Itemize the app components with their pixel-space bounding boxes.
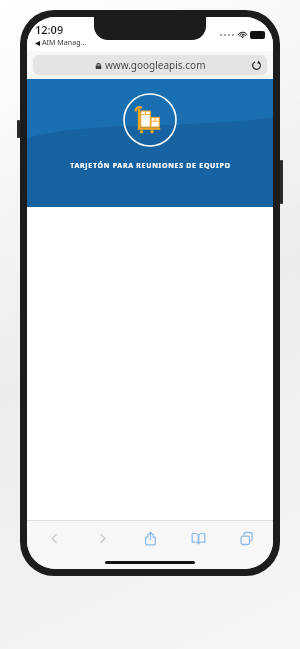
staticText: AIM Manag…: [42, 38, 87, 48]
button[interactable]: Share: [133, 521, 167, 555]
button[interactable]: Bookmarks: [181, 521, 215, 555]
button[interactable]: Reload: [250, 59, 262, 71]
button[interactable]: www.googleapis.com: [33, 55, 267, 75]
button[interactable]: Back: [37, 521, 71, 555]
staticText: www.googleapis.com: [105, 58, 206, 72]
button[interactable]: Forward: [85, 521, 119, 555]
button[interactable]: Tabs: [229, 521, 263, 555]
staticText: TARJETÓN PARA REUNIONES DE EQUIPO: [70, 161, 231, 171]
staticText: 12:09: [35, 22, 64, 37]
